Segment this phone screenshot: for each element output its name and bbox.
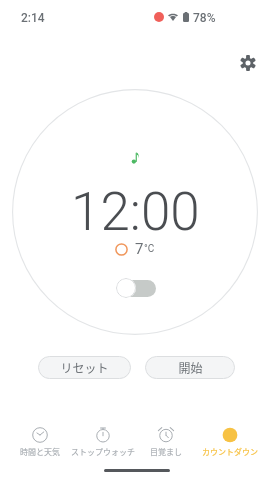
staticText: °C: [144, 243, 155, 255]
button[interactable]: 開始: [145, 356, 235, 379]
staticText: ストップウォッチ: [71, 446, 134, 458]
button[interactable]: リセット: [38, 356, 131, 379]
staticText: 時間と天気: [20, 446, 60, 458]
button[interactable]: Settings: [234, 49, 261, 76]
button[interactable]: 目覚まし: [134, 424, 198, 458]
staticText: 12:00: [71, 181, 200, 243]
button[interactable]: 時間と天気: [8, 424, 71, 458]
button[interactable]: カウントダウン: [198, 424, 262, 458]
button[interactable]: Alarm sound toggle: [116, 278, 156, 298]
staticText: 2:14: [21, 11, 45, 25]
staticText: 7: [135, 240, 144, 258]
staticText: 目覚まし: [150, 446, 182, 458]
staticText: リセット: [60, 359, 109, 376]
button[interactable]: ストップウォッチ: [71, 424, 134, 458]
staticText: 78%: [193, 11, 216, 22]
staticText: 開始: [178, 359, 203, 376]
staticText: カウントダウン: [202, 446, 258, 458]
